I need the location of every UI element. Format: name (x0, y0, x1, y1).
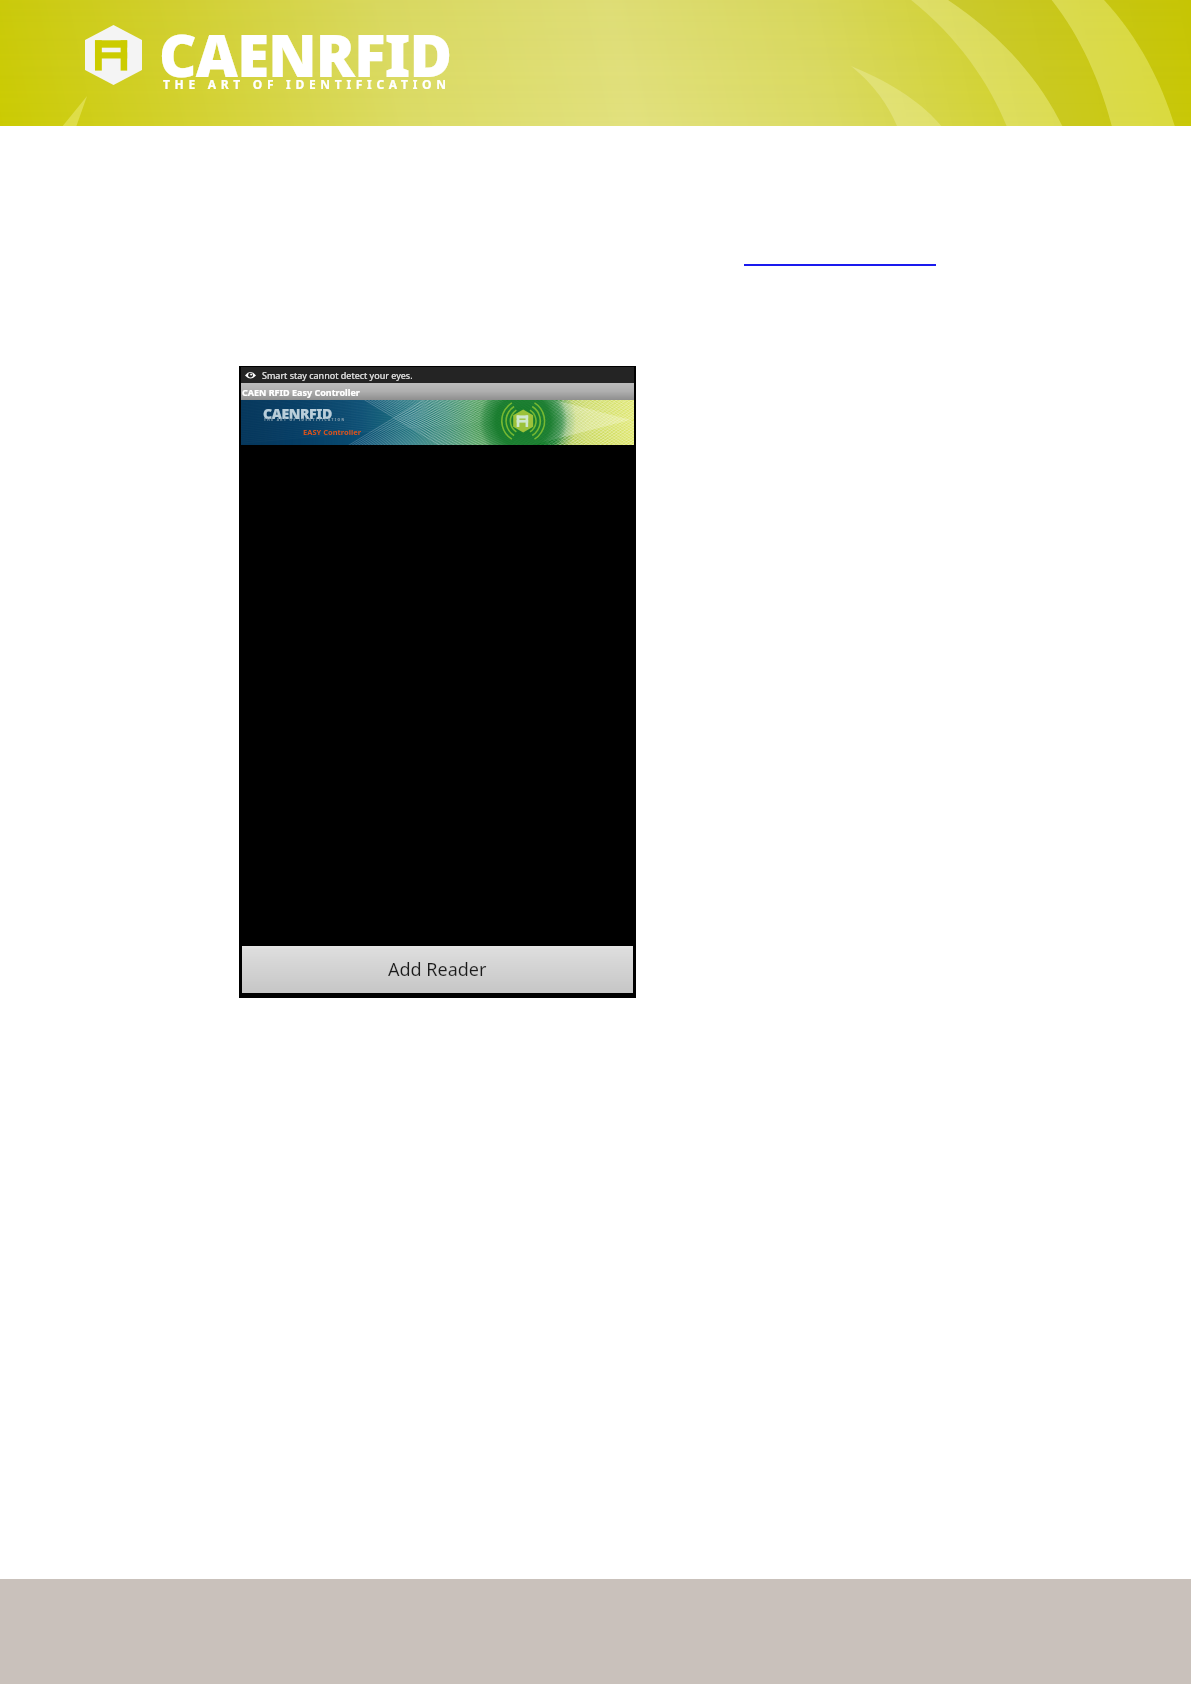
staticText: CAENRFID (159, 15, 452, 94)
button[interactable] (744, 255, 936, 266)
button[interactable]: Add Reader (242, 946, 633, 993)
staticText: CAEN RFID Easy Controller (242, 386, 360, 398)
other: Smart stay (245, 371, 256, 379)
staticText: Smart stay cannot detect your eyes. (262, 369, 413, 381)
staticText: THE ART OF IDENTIFICATION (163, 76, 451, 92)
staticText: THE ART OF IDENTIFICATION (264, 418, 346, 422)
staticText: Add Reader (388, 957, 487, 982)
staticText: CAENRFID (263, 404, 332, 423)
button[interactable]: CAEN RFID Easy Controller (241, 383, 634, 400)
staticText: EASY Controller (303, 427, 361, 437)
